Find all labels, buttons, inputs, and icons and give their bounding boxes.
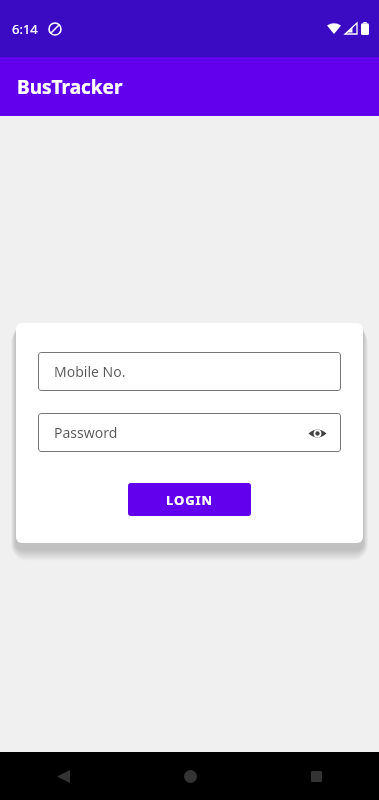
button[interactable]: Password [38, 413, 341, 452]
staticText: LOGIN [166, 491, 213, 509]
staticText: BusTracker [17, 74, 123, 100]
button[interactable]: Home [127, 752, 253, 800]
staticText: Password [54, 423, 118, 442]
button[interactable]: Toggle password visibility [305, 421, 329, 445]
staticText: Mobile No. [54, 362, 126, 381]
staticText: 6:14 [12, 20, 38, 38]
button[interactable]: Mobile No. [38, 352, 341, 391]
button[interactable]: Back [0, 752, 127, 800]
button[interactable]: Recent apps [253, 752, 379, 800]
button[interactable]: LOGIN [128, 483, 251, 516]
